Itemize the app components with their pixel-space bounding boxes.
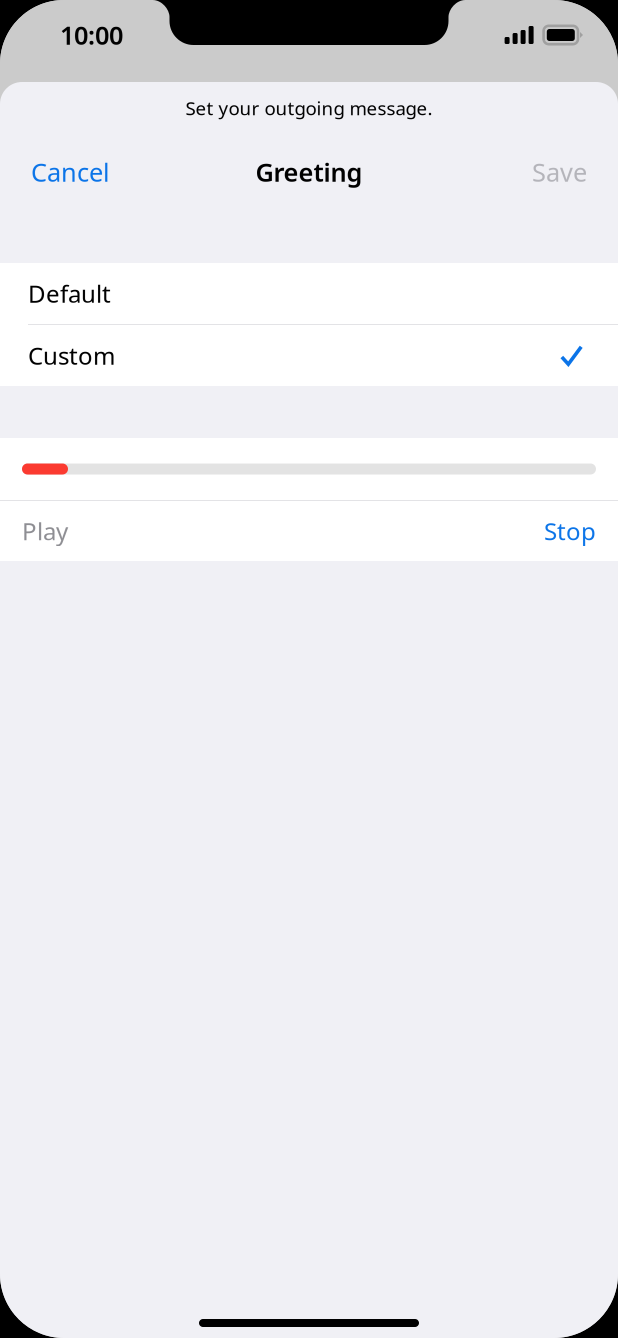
button[interactable]: Cancel xyxy=(31,147,110,197)
button[interactable]: Custom xyxy=(0,325,618,386)
staticText: Custom xyxy=(28,340,115,371)
button[interactable]: Stop xyxy=(418,501,618,561)
button[interactable]: Default xyxy=(0,263,618,324)
staticText: Play xyxy=(22,515,68,547)
staticText: Cancel xyxy=(31,155,110,189)
staticText: Greeting xyxy=(255,155,362,189)
staticText: Default xyxy=(28,278,111,309)
button[interactable]: Play xyxy=(0,501,200,561)
staticText: Stop xyxy=(544,515,596,547)
staticText: Set your outgoing message. xyxy=(185,96,432,120)
staticText: Save xyxy=(532,155,587,189)
staticText: 10:00 xyxy=(60,18,123,52)
button[interactable]: Save xyxy=(532,147,587,197)
